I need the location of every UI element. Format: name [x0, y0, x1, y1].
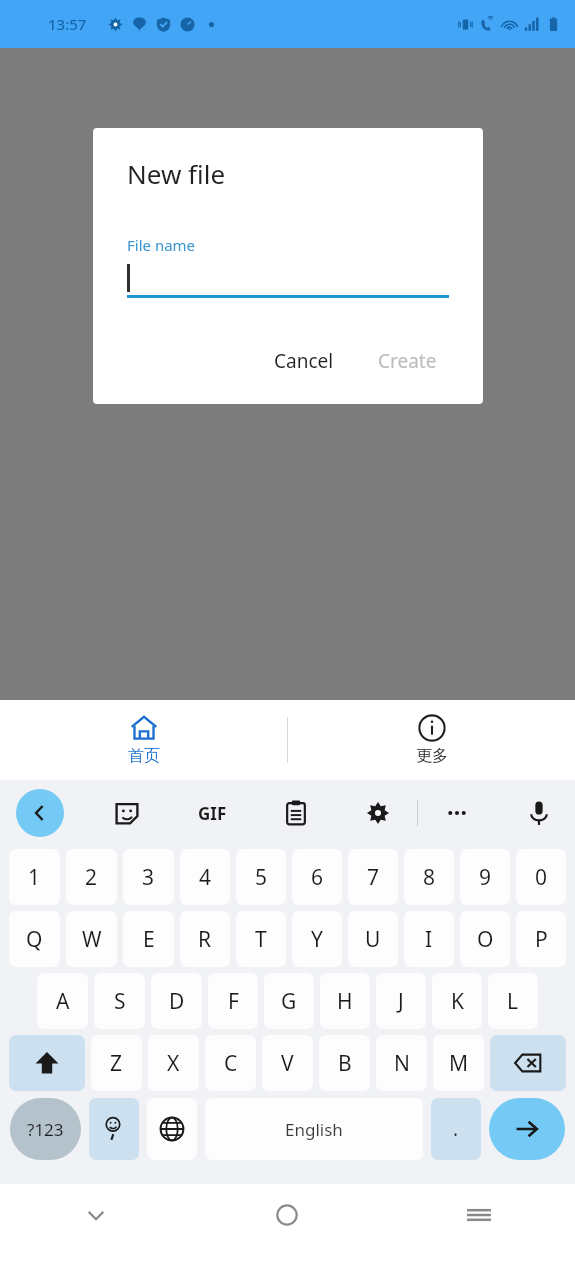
button[interactable]: Shift — [9, 1035, 85, 1091]
button[interactable]: 7 — [348, 849, 398, 905]
button[interactable]: 6 — [292, 849, 342, 905]
button[interactable]: D — [151, 973, 202, 1029]
staticText: New file — [127, 156, 226, 191]
button[interactable]: Emoji — [89, 1098, 139, 1160]
staticText: X — [167, 1049, 180, 1078]
button[interactable]: I — [404, 911, 454, 967]
staticText: B — [338, 1049, 352, 1078]
staticText: 9 — [479, 863, 492, 892]
button[interactable]: 4 — [180, 849, 230, 905]
button[interactable]: Voice input — [519, 793, 559, 833]
button[interactable]: Clipboard — [276, 793, 316, 833]
staticText: P — [535, 925, 548, 954]
button[interactable]: Hide keyboard — [0, 1184, 191, 1246]
staticText: 2 — [85, 863, 98, 892]
button[interactable]: Z — [91, 1035, 142, 1091]
button[interactable]: B — [319, 1035, 370, 1091]
button[interactable]: E — [123, 911, 174, 967]
staticText: 4 — [199, 863, 212, 892]
button[interactable]: 3 — [123, 849, 174, 905]
button[interactable]: 2 — [66, 849, 117, 905]
button[interactable]: Upload File — [463, 639, 546, 722]
staticText: Z — [110, 1049, 123, 1078]
button[interactable]: Y — [292, 911, 342, 967]
staticText: 1 — [28, 863, 41, 892]
staticText: . — [453, 1116, 459, 1142]
staticText: Q — [26, 925, 43, 954]
staticText: 更多 — [416, 746, 448, 766]
button[interactable]: 8 — [404, 849, 454, 905]
button[interactable]: Create — [366, 338, 449, 384]
staticText: V — [281, 1049, 294, 1078]
button[interactable]: Recent apps — [383, 1184, 575, 1246]
button[interactable]: English — [205, 1098, 423, 1160]
staticText: N — [394, 1049, 410, 1078]
button[interactable]: Change language — [147, 1098, 197, 1160]
button[interactable]: A — [37, 973, 88, 1029]
staticText: L — [507, 987, 519, 1016]
staticText: Cancel — [274, 348, 334, 374]
staticText: K — [451, 987, 464, 1016]
button[interactable]: Enter — [489, 1098, 565, 1160]
button[interactable]: 0 — [516, 849, 566, 905]
button[interactable]: J — [376, 973, 426, 1029]
button[interactable]: Cancel — [262, 338, 346, 384]
staticText: GIF — [198, 802, 227, 825]
button[interactable]: Backspace — [490, 1035, 566, 1091]
button[interactable]: R — [180, 911, 230, 967]
button[interactable]: S — [94, 973, 145, 1029]
staticText: A — [56, 987, 70, 1016]
button[interactable]: Q — [9, 911, 60, 967]
staticText: Create — [378, 348, 437, 374]
button[interactable]: 5 — [236, 849, 286, 905]
button[interactable]: X — [148, 1035, 199, 1091]
button[interactable]: M — [433, 1035, 484, 1091]
button[interactable]: F — [208, 973, 258, 1029]
button[interactable]: O — [460, 911, 510, 967]
button[interactable]: G — [264, 973, 314, 1029]
button[interactable]: 9 — [460, 849, 510, 905]
staticText: D — [169, 987, 185, 1016]
button[interactable]: P — [516, 911, 566, 967]
button[interactable]: Settings — [358, 793, 398, 833]
staticText: Y — [311, 925, 323, 954]
staticText: File name — [127, 235, 196, 255]
button[interactable]: Home — [191, 1184, 383, 1246]
button[interactable]: N — [376, 1035, 427, 1091]
button[interactable]: More options — [437, 793, 477, 833]
staticText: U — [365, 925, 381, 954]
button[interactable]: V — [262, 1035, 313, 1091]
button[interactable]: . — [431, 1098, 481, 1160]
staticText: S — [114, 987, 126, 1016]
button[interactable]: ?123 — [10, 1098, 81, 1160]
button[interactable]: W — [66, 911, 117, 967]
staticText: H — [337, 987, 353, 1016]
button[interactable]: GIF — [190, 791, 234, 835]
staticText: C — [224, 1049, 238, 1078]
staticText: M — [449, 1049, 469, 1078]
staticText: I — [425, 925, 433, 954]
button[interactable]: 首页 — [0, 700, 287, 780]
button[interactable]: 更多 — [288, 700, 575, 780]
button[interactable]: T — [236, 911, 286, 967]
button[interactable]: L — [488, 973, 538, 1029]
button[interactable]: H — [320, 973, 370, 1029]
button[interactable]: U — [348, 911, 398, 967]
staticText: W — [82, 925, 102, 954]
staticText: 6 — [311, 863, 324, 892]
button[interactable]: K — [432, 973, 482, 1029]
button[interactable]: Stickers — [107, 793, 147, 833]
staticText: O — [477, 925, 494, 954]
button[interactable]: 1 — [9, 849, 60, 905]
button[interactable]: Back — [16, 789, 64, 837]
staticText: 13:57 — [48, 14, 87, 34]
staticText: R — [198, 925, 212, 954]
staticText: ?123 — [27, 1118, 64, 1141]
button[interactable]: C — [205, 1035, 256, 1091]
